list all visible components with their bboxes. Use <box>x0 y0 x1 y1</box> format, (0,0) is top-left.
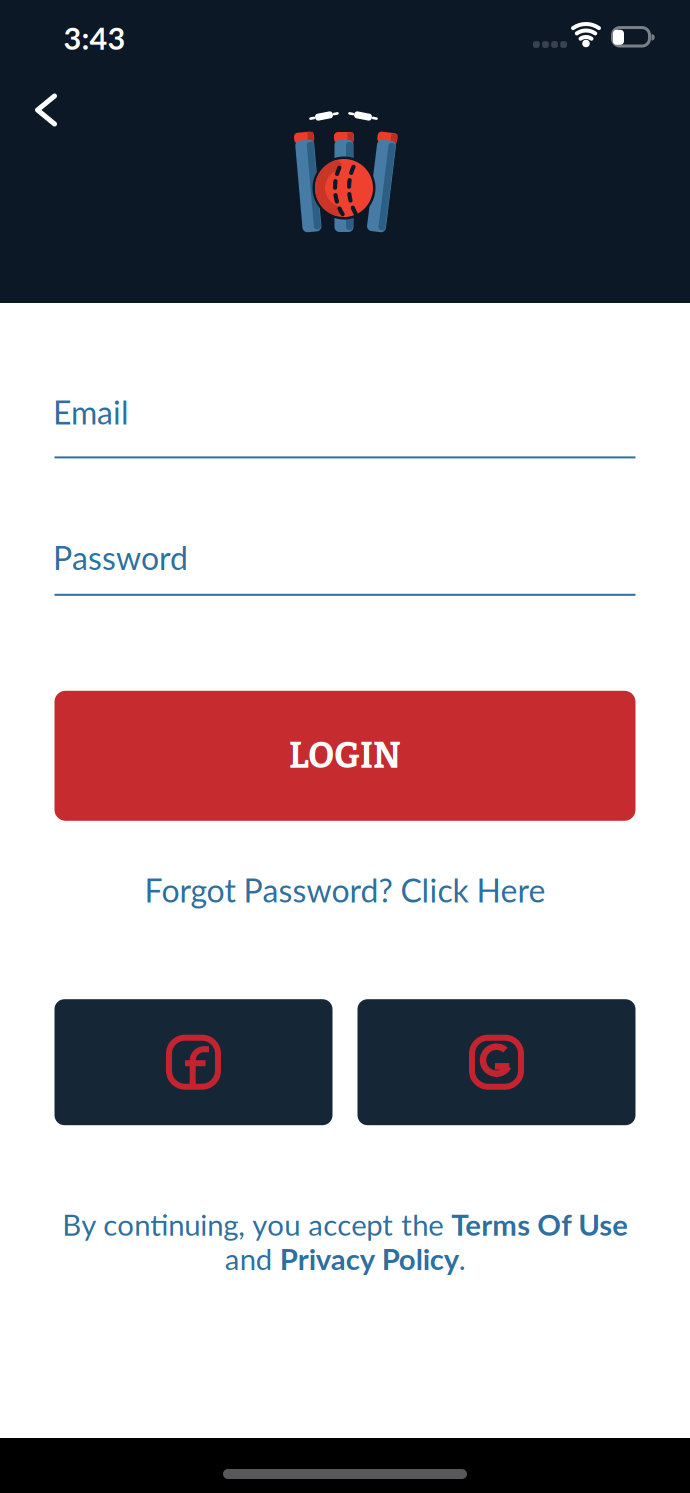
button[interactable]: Login with Facebook <box>54 999 332 1125</box>
button[interactable]: Login with Google <box>357 999 635 1125</box>
staticText: 3:43 <box>63 20 125 56</box>
staticText: LOGIN <box>289 734 401 777</box>
staticText: Email <box>53 393 129 431</box>
button[interactable]: Back <box>33 92 59 128</box>
staticText: Password <box>53 538 188 577</box>
staticText: By continuing, you accept the Terms Of U… <box>62 1207 628 1276</box>
button[interactable]: LOGIN <box>54 691 635 821</box>
button[interactable]: Forgot Password? Click Here <box>144 871 545 909</box>
staticText: Forgot Password? Click Here <box>144 871 545 909</box>
